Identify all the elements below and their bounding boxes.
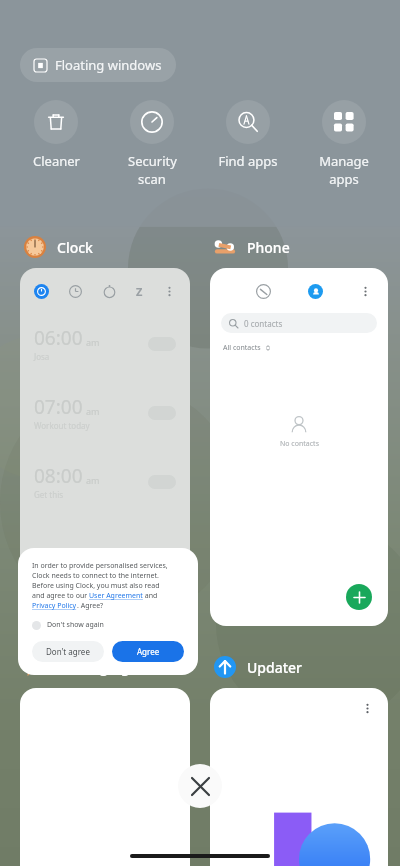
staticText: Find apps xyxy=(218,152,278,170)
staticText: Clock needs to connect to the internet. xyxy=(32,571,159,581)
button[interactable] xyxy=(20,688,190,866)
staticText: am xyxy=(86,336,100,348)
staticText: Phone xyxy=(247,238,290,257)
staticText: scan xyxy=(138,170,166,188)
staticText: No contacts xyxy=(280,439,319,449)
staticText: am xyxy=(86,405,100,417)
staticText: 07:00 xyxy=(34,394,83,420)
button[interactable]: Don't show again xyxy=(32,620,104,630)
staticText: Workout today xyxy=(34,420,90,431)
staticText: Josa xyxy=(34,351,50,362)
staticText: Manage xyxy=(319,152,369,170)
button[interactable]: Close all xyxy=(178,764,222,808)
staticText: Security xyxy=(128,152,177,170)
staticText: Get this xyxy=(34,489,64,500)
staticText: Don't show again xyxy=(47,620,104,630)
staticText: Z xyxy=(136,284,143,299)
staticText: Privacy Policy xyxy=(32,601,77,611)
button[interactable]: Z xyxy=(20,268,190,638)
staticText: Messaging xyxy=(57,658,130,677)
button[interactable]: Add contact xyxy=(346,584,372,610)
button[interactable]: 0 contacts xyxy=(221,313,377,333)
button[interactable]: Don't agree xyxy=(32,641,104,662)
staticText: In order to provide personalised service… xyxy=(32,561,168,571)
staticText: Before using Clock, you must also read xyxy=(32,581,160,591)
button[interactable]: Security xyxy=(106,98,198,190)
staticText: and agree to our xyxy=(32,591,89,601)
staticText: Cleaner xyxy=(33,152,80,170)
button[interactable]: Agree xyxy=(112,641,184,662)
staticText: apps xyxy=(329,170,359,188)
staticText: Updater xyxy=(247,658,303,677)
staticText: Clock xyxy=(57,238,93,257)
staticText: and xyxy=(143,591,158,601)
staticText: 08:00 xyxy=(34,463,83,489)
staticText: 06:00 xyxy=(34,325,83,351)
staticText: Agree xyxy=(137,646,160,657)
button[interactable]: Cleaner xyxy=(10,98,102,172)
button[interactable]: Clock xyxy=(22,232,93,262)
staticText: Floating windows xyxy=(55,56,162,74)
button[interactable]: Messaging xyxy=(22,652,130,682)
button[interactable]: Updater xyxy=(212,652,303,682)
button[interactable]: Phone xyxy=(212,232,290,262)
staticText: . Agree? xyxy=(77,601,104,611)
staticText: User Agreement xyxy=(89,591,143,601)
button[interactable]: Floating windows xyxy=(20,48,176,82)
staticText: 0 contacts xyxy=(244,318,283,329)
button[interactable]: 0 contacts xyxy=(210,268,388,626)
staticText: am xyxy=(86,474,100,486)
button[interactable]: Find apps xyxy=(202,98,294,172)
button[interactable]: Manage xyxy=(298,98,390,190)
staticText: All contacts xyxy=(223,343,261,353)
button[interactable] xyxy=(210,688,388,866)
button[interactable]: All contacts xyxy=(223,343,271,353)
staticText: Don't agree xyxy=(46,646,90,657)
